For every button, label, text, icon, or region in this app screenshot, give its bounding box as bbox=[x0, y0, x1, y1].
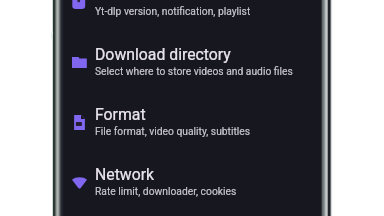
staticText: Download directory bbox=[95, 45, 231, 64]
button[interactable]: General bbox=[63, 0, 321, 45]
button[interactable]: Format bbox=[63, 105, 321, 165]
staticText: Network bbox=[95, 165, 155, 184]
staticText: File format, video quality, subtitles bbox=[95, 125, 251, 137]
button[interactable]: Network bbox=[63, 165, 321, 216]
staticText: Select where to store videos and audio f… bbox=[95, 65, 293, 77]
staticText: Format bbox=[95, 105, 146, 124]
button[interactable]: Download directory bbox=[63, 45, 321, 105]
staticText: Yt-dlp version, notification, playlist bbox=[95, 5, 251, 17]
staticText: Rate limit, downloader, cookies bbox=[95, 185, 237, 197]
